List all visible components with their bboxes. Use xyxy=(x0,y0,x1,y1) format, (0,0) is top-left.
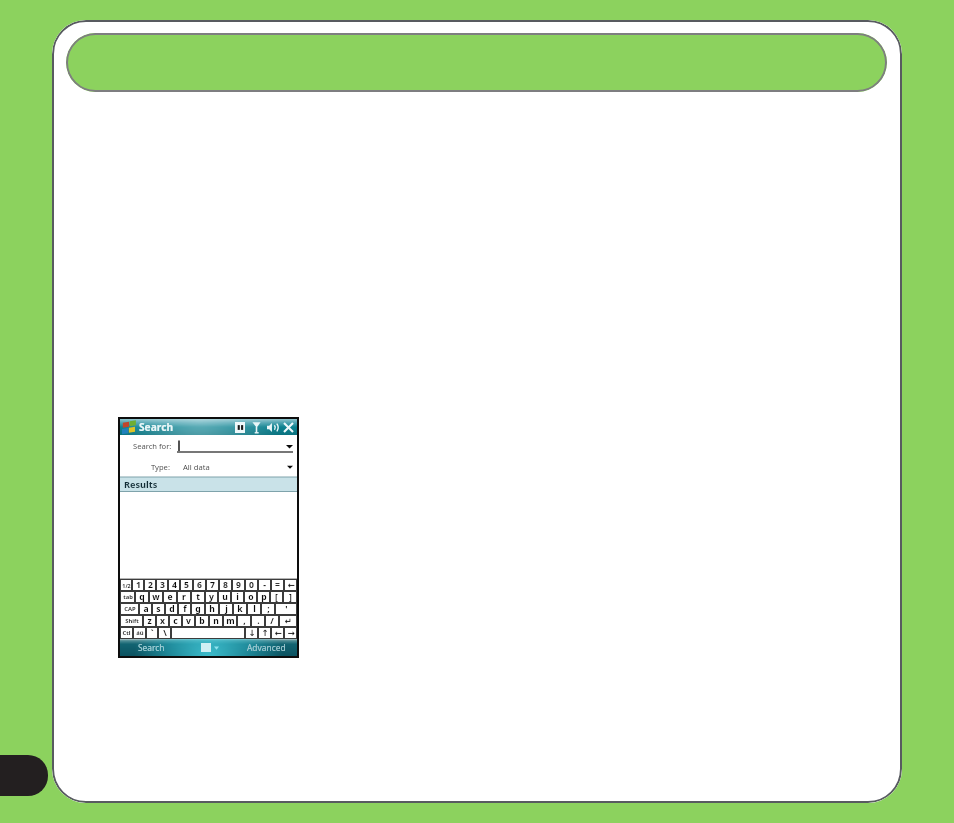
staticText: x xyxy=(160,615,165,627)
staticText: [ xyxy=(275,591,278,603)
button[interactable]: e xyxy=(163,591,177,603)
button[interactable]: 3 xyxy=(156,579,168,591)
button[interactable]: ` xyxy=(146,627,158,639)
staticText: n xyxy=(213,615,219,627)
staticText: ↑ xyxy=(261,628,269,638)
button[interactable]: All data xyxy=(183,461,293,473)
staticText: h xyxy=(209,603,215,615)
button[interactable]: g xyxy=(191,603,205,615)
button[interactable]: 7 xyxy=(206,579,219,591)
button[interactable]: t xyxy=(191,591,205,603)
button[interactable]: o xyxy=(244,591,257,603)
button[interactable]: \ xyxy=(158,627,171,639)
button[interactable]: 8 xyxy=(219,579,232,591)
button[interactable]: v xyxy=(182,615,195,627)
staticText: ↓ xyxy=(248,628,256,638)
button[interactable]: Chapter header xyxy=(66,33,887,92)
button[interactable]: → xyxy=(284,627,297,639)
button[interactable]: k xyxy=(233,603,247,615)
staticText: Results xyxy=(124,478,158,491)
staticText: p xyxy=(261,591,267,603)
button[interactable]: / xyxy=(265,615,279,627)
staticText: 1 xyxy=(136,579,141,591)
button[interactable]: a xyxy=(139,603,152,615)
button[interactable]: x xyxy=(156,615,169,627)
button[interactable]: u xyxy=(218,591,231,603)
button[interactable]: Search for field xyxy=(177,439,293,453)
staticText: ] xyxy=(289,591,292,603)
button[interactable]: áü xyxy=(133,627,146,639)
button[interactable]: CAP xyxy=(120,603,139,615)
staticText: Type: xyxy=(151,462,170,472)
staticText: 3 xyxy=(160,579,165,591)
button[interactable]: 2 xyxy=(144,579,156,591)
button[interactable]: p xyxy=(257,591,270,603)
button[interactable]: i xyxy=(231,591,244,603)
staticText: . xyxy=(257,615,260,627)
button[interactable]: s xyxy=(152,603,165,615)
button[interactable]: b xyxy=(195,615,209,627)
button[interactable]: 4 xyxy=(168,579,180,591)
staticText: / xyxy=(270,615,274,627)
button[interactable]: f xyxy=(178,603,191,615)
staticText: áü xyxy=(136,629,144,637)
staticText: c xyxy=(173,615,178,627)
button[interactable]: r xyxy=(177,591,191,603)
button[interactable]: ↵ xyxy=(279,615,297,627)
button[interactable]: - xyxy=(258,579,271,591)
button[interactable]: y xyxy=(205,591,218,603)
button[interactable] xyxy=(171,627,245,639)
button[interactable]: ← xyxy=(284,579,297,591)
button[interactable]: ' xyxy=(275,603,297,615)
button[interactable]: , xyxy=(237,615,251,627)
button[interactable]: Ctl xyxy=(120,627,133,639)
button[interactable]: ; xyxy=(261,603,275,615)
button[interactable]: 6 xyxy=(193,579,206,591)
staticText: 6 xyxy=(197,579,202,591)
staticText: m xyxy=(226,615,235,627)
button[interactable]: l xyxy=(247,603,261,615)
button[interactable]: = xyxy=(271,579,284,591)
button[interactable]: ] xyxy=(283,591,297,603)
staticText: 5 xyxy=(184,579,189,591)
staticText: 8 xyxy=(223,579,228,591)
staticText: 7 xyxy=(210,579,215,591)
button[interactable]: w xyxy=(149,591,163,603)
button[interactable]: d xyxy=(165,603,178,615)
button[interactable]: [ xyxy=(270,591,283,603)
staticText: w xyxy=(152,591,160,603)
button[interactable]: . xyxy=(251,615,265,627)
staticText: q xyxy=(139,591,145,603)
button[interactable]: j xyxy=(219,603,233,615)
button[interactable]: m xyxy=(223,615,237,627)
staticText: a xyxy=(143,603,149,615)
button[interactable]: Shift xyxy=(120,615,143,627)
button[interactable]: ↑ xyxy=(258,627,271,639)
staticText: 0 xyxy=(249,579,254,591)
staticText: 1/2 xyxy=(122,582,131,589)
button[interactable]: ↓ xyxy=(245,627,258,639)
button[interactable]: c xyxy=(169,615,182,627)
staticText: Ctl xyxy=(122,629,131,637)
staticText: r xyxy=(182,591,186,603)
button[interactable]: ← xyxy=(271,627,284,639)
staticText: = xyxy=(275,579,280,591)
button[interactable]: q xyxy=(135,591,149,603)
staticText: tab xyxy=(123,593,133,601)
staticText: All data xyxy=(183,462,210,472)
button[interactable]: z xyxy=(143,615,156,627)
button[interactable]: tab xyxy=(120,591,135,603)
button[interactable]: h xyxy=(205,603,219,615)
button[interactable]: 0 xyxy=(245,579,258,591)
button[interactable]: n xyxy=(209,615,223,627)
button[interactable]: 9 xyxy=(232,579,245,591)
button[interactable]: Section tab xyxy=(0,755,48,796)
button[interactable]: Advanced xyxy=(247,642,286,653)
staticText: Search xyxy=(139,420,174,434)
button[interactable]: 5 xyxy=(180,579,193,591)
button[interactable]: 1/2 xyxy=(120,579,132,591)
button[interactable]: Close xyxy=(284,421,293,433)
button[interactable]: 1 xyxy=(132,579,144,591)
button[interactable]: Search xyxy=(138,642,165,653)
